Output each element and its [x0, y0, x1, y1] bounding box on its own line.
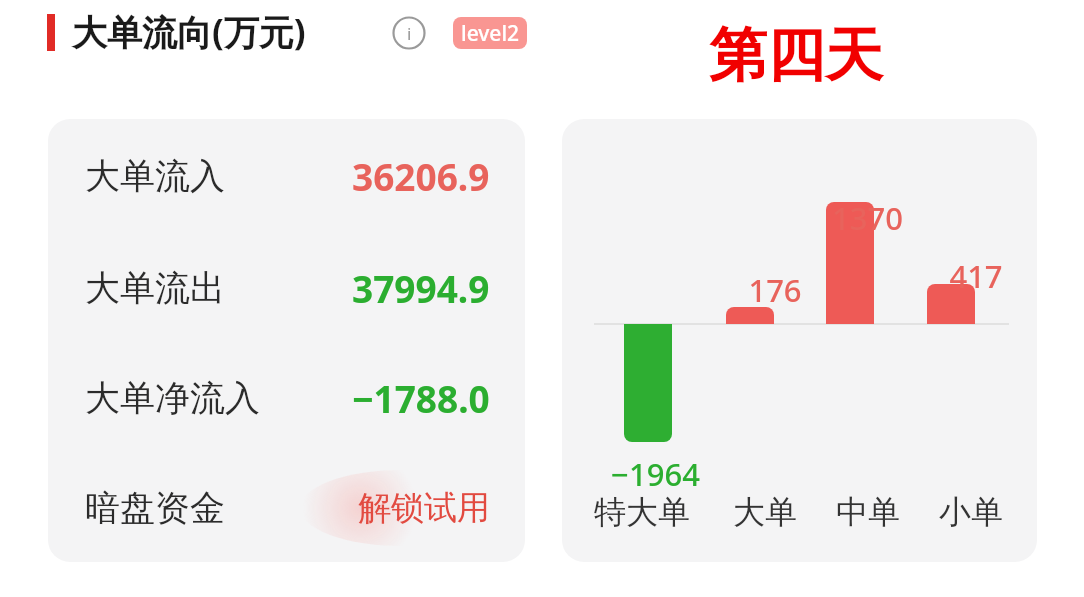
staticText: 第四天 — [709, 19, 883, 92]
staticText: 36206.9 — [352, 151, 490, 201]
staticText: 大单流向(万元) — [72, 8, 306, 56]
staticText: 大单流出 — [85, 266, 225, 310]
staticText: 特大单 — [594, 492, 690, 532]
staticText: level2 — [461, 19, 520, 48]
staticText: 解锁试用 — [358, 487, 490, 529]
staticText: 1370 — [832, 197, 903, 239]
staticText: 暗盘资金 — [85, 486, 225, 530]
staticText: 中单 — [836, 492, 900, 532]
button[interactable]: Information — [392, 16, 426, 50]
staticText: 大单净流入 — [85, 376, 260, 420]
staticText: i — [407, 22, 412, 45]
staticText: 37994.9 — [352, 263, 490, 313]
staticText: −1964 — [611, 453, 700, 495]
staticText: 176 — [748, 269, 802, 311]
staticText: −1788.0 — [352, 373, 490, 423]
button[interactable]: 解锁试用 — [330, 482, 490, 534]
button[interactable]: level2 — [453, 17, 527, 49]
staticText: 大单流入 — [85, 154, 225, 198]
staticText: 小单 — [939, 492, 1003, 532]
staticText: 大单 — [733, 492, 797, 532]
staticText: 417 — [949, 255, 1003, 297]
